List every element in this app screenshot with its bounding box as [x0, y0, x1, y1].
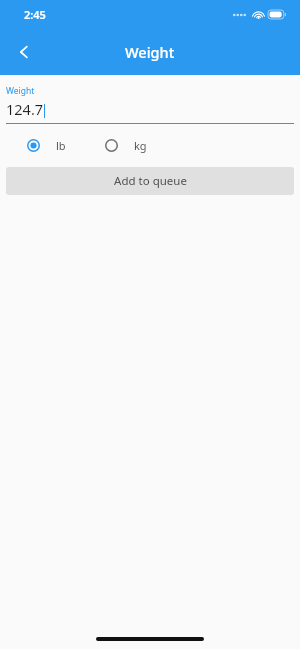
staticText: lb — [56, 138, 66, 153]
staticText: Add to queue — [114, 173, 187, 189]
staticText: 2:45 — [24, 7, 46, 22]
staticText: Weight — [6, 85, 35, 97]
button[interactable]: lb — [22, 134, 66, 156]
button[interactable]: Add to queue — [6, 167, 294, 195]
button[interactable]: Weight — [6, 75, 294, 124]
staticText: Weight — [125, 42, 175, 62]
button[interactable]: kg — [100, 134, 147, 156]
staticText: kg — [134, 138, 147, 153]
button[interactable]: Back — [4, 32, 44, 72]
staticText: 124.7 — [6, 99, 44, 119]
